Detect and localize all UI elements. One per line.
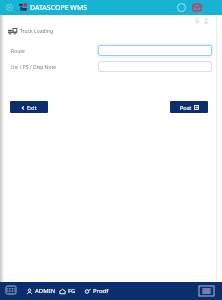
staticText: Inv / PS / Disp Note [11, 64, 57, 71]
staticText: DATASCOPE WMS [30, 3, 88, 13]
button[interactable]: Menu [199, 286, 214, 296]
button[interactable]: Route input [98, 45, 212, 56]
staticText: FG [68, 287, 76, 295]
staticText: ADMIN [35, 287, 56, 295]
button[interactable]: Messages [192, 3, 202, 12]
button[interactable]: Exit [10, 101, 48, 113]
button[interactable]: ADMIN [26, 286, 56, 296]
staticText: Truck Loading [20, 28, 54, 35]
staticText: Post [180, 104, 192, 111]
button[interactable]: Expand [4, 2, 15, 13]
staticText: Route [11, 48, 25, 55]
button[interactable]: Prodf [84, 286, 109, 296]
button[interactable]: Post [170, 101, 208, 113]
button[interactable]: FG [59, 286, 76, 296]
button[interactable]: Keyboard [6, 286, 16, 294]
button[interactable]: Note input [98, 61, 212, 72]
button[interactable]: Help [177, 3, 186, 12]
staticText: Exit [27, 104, 37, 111]
staticText: Prodf [93, 287, 109, 295]
